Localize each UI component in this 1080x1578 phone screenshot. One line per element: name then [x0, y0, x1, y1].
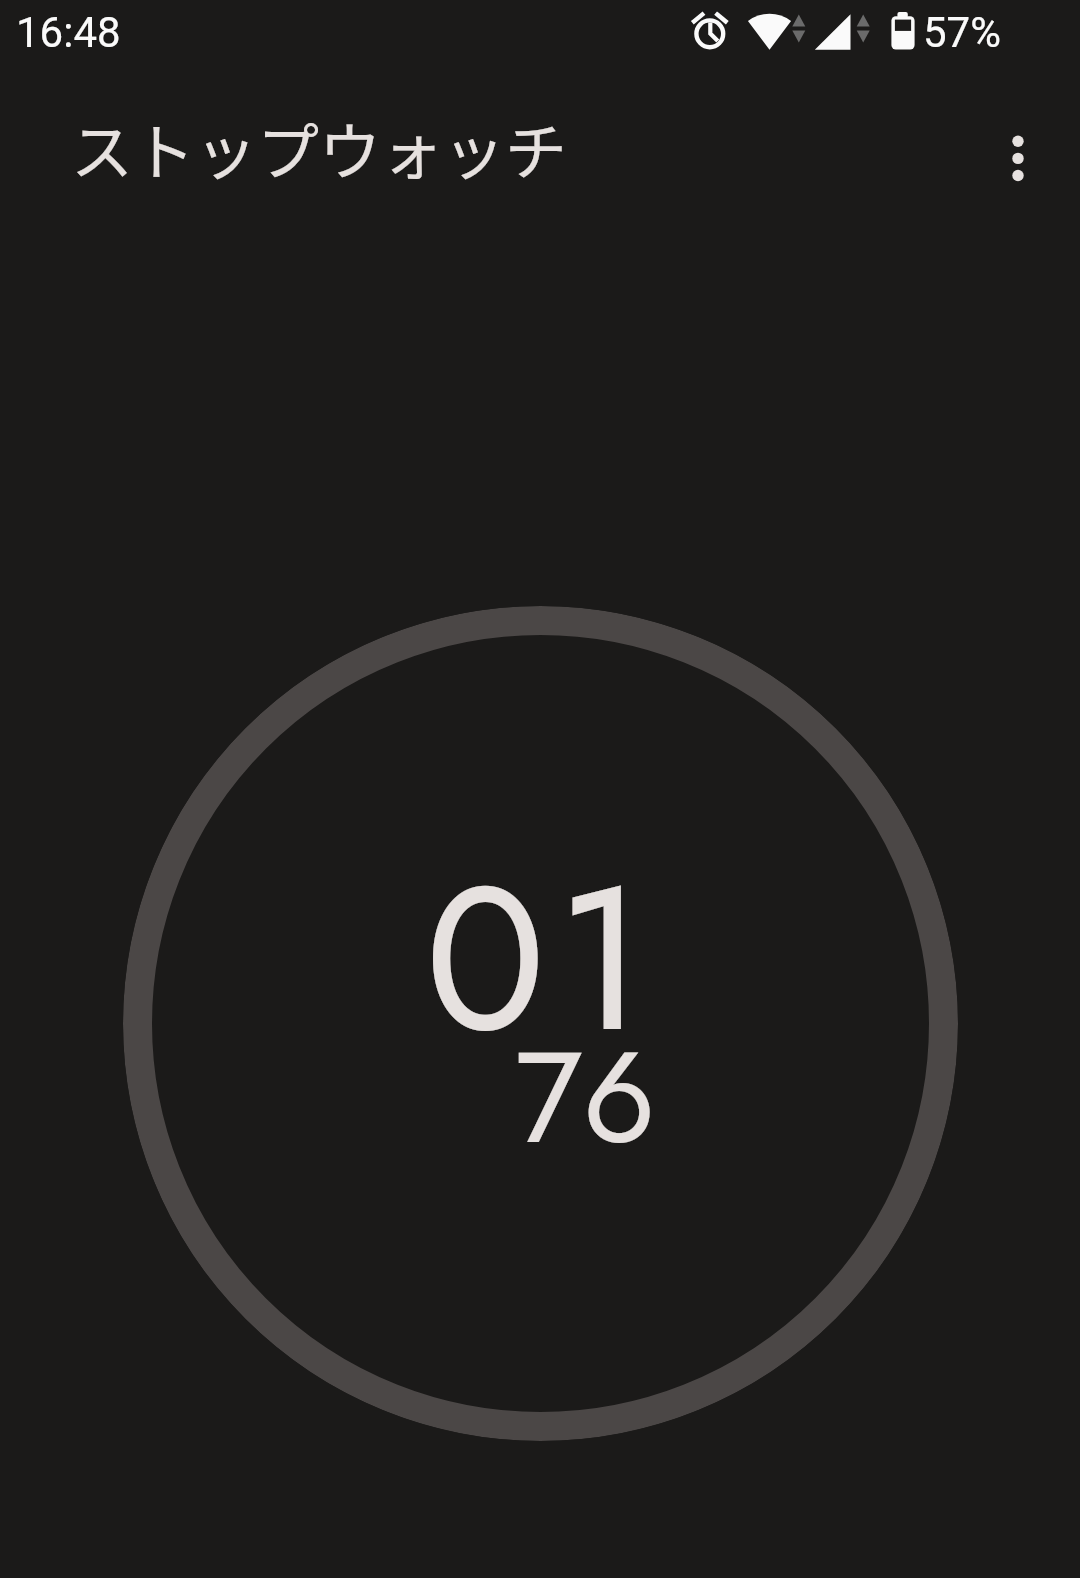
staticText: 76	[515, 1005, 656, 1190]
button[interactable]	[123, 606, 958, 1441]
staticText: 57%	[923, 8, 1001, 57]
staticText: 16:48	[16, 8, 121, 57]
button[interactable]	[994, 134, 1042, 182]
staticText: 01	[425, 814, 659, 1104]
staticText: ストップウォッチ	[71, 103, 568, 193]
